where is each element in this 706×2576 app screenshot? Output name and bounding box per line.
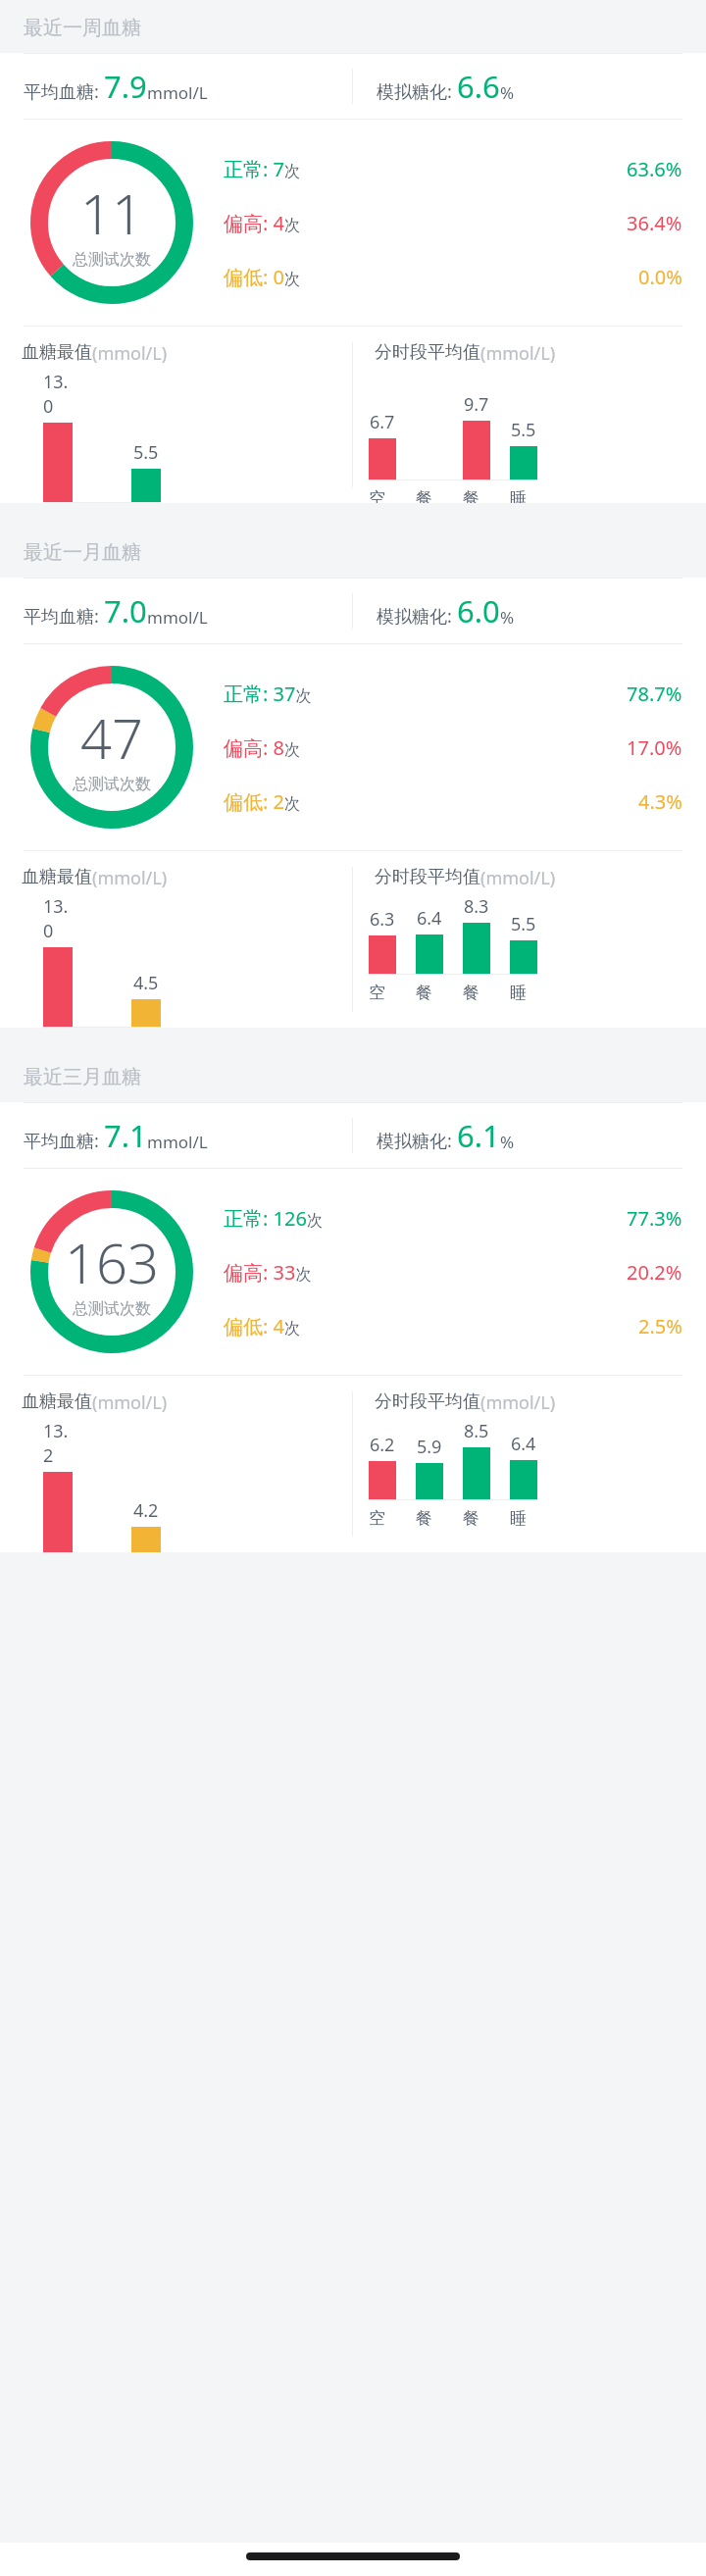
button[interactable]: 163 xyxy=(0,1169,706,1375)
staticText: 9.7 xyxy=(464,392,489,417)
staticText: 4.5 xyxy=(133,971,159,995)
staticText: 偏高: 8次 xyxy=(224,734,300,761)
staticText: 5.9 xyxy=(417,1435,442,1459)
button[interactable]: 分时段平均值 xyxy=(353,1376,706,1552)
button[interactable]: 11 xyxy=(0,120,706,326)
staticText: 8.3 xyxy=(464,894,489,919)
staticText: (mmol/L) xyxy=(480,1390,556,1415)
staticText: mmol/L xyxy=(147,606,208,629)
staticText: 6.1 xyxy=(457,1115,500,1156)
staticText: 模拟糖化: xyxy=(377,604,452,629)
staticText: 8.5 xyxy=(464,1419,489,1443)
button[interactable]: 血糖最值 xyxy=(0,851,352,1028)
staticText: 偏高: 33次 xyxy=(224,1259,312,1286)
staticText: 63.6% xyxy=(627,156,682,182)
staticText: 最近一周血糖 xyxy=(24,16,141,40)
staticText: 总测试次数 xyxy=(73,250,151,270)
staticText: 睡前 xyxy=(510,488,537,503)
staticText: 77.3% xyxy=(627,1205,682,1232)
staticText: % xyxy=(500,606,515,629)
staticText: 6.0 xyxy=(457,590,500,631)
staticText: 模拟糖化: xyxy=(377,1129,452,1153)
staticText: 偏低: 2次 xyxy=(224,788,300,815)
staticText: 平均血糖: xyxy=(24,1129,99,1153)
staticText: 5.5 xyxy=(511,418,536,442)
staticText: 分时段平均值 xyxy=(375,866,480,888)
button[interactable]: 平均血糖: xyxy=(0,579,352,643)
staticText: 17.0% xyxy=(627,734,682,761)
staticText: (mmol/L) xyxy=(92,341,168,366)
staticText: (mmol/L) xyxy=(480,866,556,890)
staticText: 6.3 xyxy=(370,907,395,932)
staticText: 正常: 37次 xyxy=(224,681,312,707)
staticText: mmol/L xyxy=(147,81,208,104)
button[interactable]: 分时段平均值 xyxy=(353,327,706,503)
staticText: 睡前 xyxy=(510,1508,537,1529)
button[interactable]: 血糖最值 xyxy=(0,327,352,503)
staticText: 7.1 xyxy=(104,1115,147,1156)
staticText: mmol/L xyxy=(147,1131,208,1153)
staticText: 正常: 126次 xyxy=(224,1205,323,1232)
staticText: 总测试次数 xyxy=(73,1299,151,1319)
staticText: 最近一月血糖 xyxy=(24,540,141,565)
staticText: 偏高: 4次 xyxy=(224,210,300,236)
staticText: 2.5% xyxy=(638,1313,682,1339)
staticText: (mmol/L) xyxy=(480,341,556,366)
staticText: 4.3% xyxy=(638,788,682,815)
staticText: 6.4 xyxy=(417,906,442,931)
staticText: 餐后 xyxy=(463,488,490,503)
staticText: 0.0% xyxy=(638,264,682,290)
staticText: 血糖最值 xyxy=(22,866,92,888)
staticText: 餐前 xyxy=(416,488,443,503)
button[interactable]: 47 xyxy=(0,644,706,850)
button[interactable]: 模拟糖化: xyxy=(353,1103,706,1168)
staticText: 餐前 xyxy=(416,1508,443,1529)
staticText: 13.0 xyxy=(43,370,73,419)
staticText: 分时段平均值 xyxy=(375,1390,480,1413)
staticText: 偏低: 4次 xyxy=(224,1313,300,1339)
staticText: 睡前 xyxy=(510,983,537,1003)
staticText: 6.6 xyxy=(457,66,500,107)
staticText: 平均血糖: xyxy=(24,604,99,629)
staticText: 平均血糖: xyxy=(24,79,99,104)
button[interactable]: 模拟糖化: xyxy=(353,54,706,119)
staticText: 20.2% xyxy=(627,1259,682,1286)
staticText: % xyxy=(500,1131,515,1153)
button[interactable]: 平均血糖: xyxy=(0,1103,352,1168)
staticText: 最近三月血糖 xyxy=(24,1065,141,1089)
staticText: 血糖最值 xyxy=(22,1390,92,1413)
staticText: 血糖最值 xyxy=(22,341,92,364)
button[interactable]: 分时段平均值 xyxy=(353,851,706,1028)
button[interactable]: 血糖最值 xyxy=(0,1376,352,1552)
staticText: 5.5 xyxy=(133,440,159,465)
staticText: (mmol/L) xyxy=(92,866,168,890)
staticText: 6.7 xyxy=(370,410,395,434)
staticText: 4.2 xyxy=(133,1498,159,1523)
staticText: 空腹 xyxy=(369,488,396,503)
staticText: 空腹 xyxy=(369,1508,396,1529)
staticText: 正常: 7次 xyxy=(224,156,300,182)
staticText: 6.4 xyxy=(511,1432,536,1456)
staticText: 5.5 xyxy=(511,912,536,936)
staticText: 7.0 xyxy=(104,590,147,631)
staticText: 空腹 xyxy=(369,983,396,1003)
staticText: 36.4% xyxy=(627,210,682,236)
staticText: 13.0 xyxy=(43,894,73,943)
staticText: % xyxy=(500,81,515,104)
staticText: 47 xyxy=(80,700,143,775)
button[interactable]: 平均血糖: xyxy=(0,54,352,119)
staticText: 餐后 xyxy=(463,1508,490,1529)
staticText: 餐后 xyxy=(463,983,490,1003)
staticText: (mmol/L) xyxy=(92,1390,168,1415)
staticText: 7.9 xyxy=(104,66,147,107)
button[interactable]: 模拟糖化: xyxy=(353,579,706,643)
staticText: 偏低: 0次 xyxy=(224,264,300,290)
staticText: 分时段平均值 xyxy=(375,341,480,364)
staticText: 餐前 xyxy=(416,983,443,1003)
staticText: 163 xyxy=(65,1225,159,1299)
staticText: 总测试次数 xyxy=(73,775,151,794)
staticText: 13.2 xyxy=(43,1419,73,1468)
staticText: 11 xyxy=(80,176,143,250)
staticText: 6.2 xyxy=(370,1433,395,1457)
staticText: 78.7% xyxy=(627,681,682,707)
